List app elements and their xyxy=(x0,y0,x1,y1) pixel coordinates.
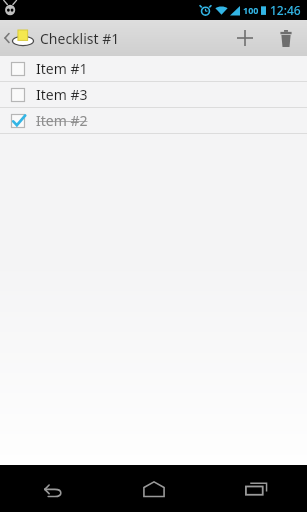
button[interactable]: Item #1 xyxy=(0,56,307,82)
button[interactable]: Recent apps xyxy=(205,465,307,512)
button[interactable]: Add item xyxy=(225,20,265,56)
staticText: Checklist #1 xyxy=(40,29,120,48)
button[interactable]: Item #3 xyxy=(0,82,307,108)
button[interactable]: Checklist #1 xyxy=(0,20,225,56)
button[interactable]: Item #2 xyxy=(0,108,307,134)
button[interactable]: Back xyxy=(0,465,103,512)
staticText: 12:46 xyxy=(270,2,301,18)
staticText: Item #2 xyxy=(36,111,88,130)
staticText: 100 xyxy=(243,4,259,16)
button[interactable]: Home xyxy=(103,465,205,512)
staticText: Item #1 xyxy=(36,59,88,78)
staticText: Item #3 xyxy=(36,85,88,104)
button[interactable]: Delete checklist xyxy=(265,20,307,56)
